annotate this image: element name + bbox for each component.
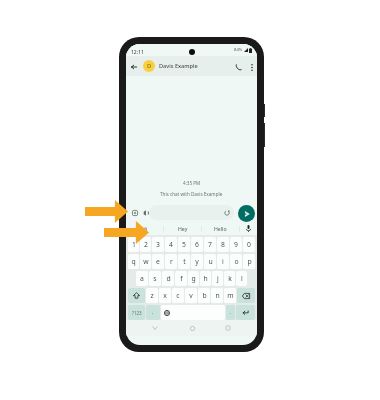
button[interactable]: n [211, 288, 223, 303]
button[interactable]: k [224, 271, 235, 286]
staticText: n [215, 291, 220, 300]
button[interactable]: 2 [140, 237, 151, 252]
button[interactable]: w [140, 254, 151, 269]
staticText: 8 [221, 240, 225, 249]
staticText: 3 [156, 240, 160, 249]
staticText: b [202, 291, 207, 300]
button[interactable]: Voice input [240, 222, 257, 235]
staticText: D [147, 62, 152, 70]
staticText: Hello [214, 225, 227, 232]
button[interactable]: f [175, 271, 187, 286]
button[interactable]: Stickers [141, 208, 151, 218]
button[interactable]: Hello [202, 222, 239, 235]
staticText: 4 [169, 240, 173, 249]
staticText: s [153, 274, 157, 283]
button[interactable]: 8 [217, 237, 229, 252]
button[interactable]: Recent apps [221, 321, 235, 335]
button[interactable]: b [198, 288, 210, 303]
staticText: y [195, 257, 199, 266]
button[interactable]: Hi [126, 222, 163, 235]
button[interactable]: Add attachment [130, 208, 140, 218]
button[interactable]: Call [232, 61, 244, 73]
button[interactable] [149, 205, 234, 220]
staticText: 0 [247, 240, 251, 249]
staticText: l [241, 274, 243, 283]
button[interactable]: u [204, 254, 216, 269]
button[interactable]: d [162, 271, 174, 286]
button[interactable]: Hey [164, 222, 201, 235]
button[interactable]: Backspace [237, 288, 255, 303]
button[interactable]: Home [185, 321, 199, 335]
button[interactable]: i [217, 254, 229, 269]
button[interactable]: j [212, 271, 223, 286]
staticText: f [180, 274, 183, 283]
button[interactable]: Period [226, 305, 235, 320]
button[interactable]: o [230, 254, 242, 269]
staticText: This chat with Davis Example [160, 191, 223, 197]
button[interactable]: r [165, 254, 177, 269]
button[interactable]: p [243, 254, 255, 269]
button[interactable]: q [128, 254, 139, 269]
staticText: 1 [132, 240, 136, 249]
button[interactable]: s [149, 271, 161, 286]
staticText: x [163, 291, 167, 300]
button[interactable]: g [188, 271, 199, 286]
staticText: 9 [234, 240, 238, 249]
button[interactable]: 0 [243, 237, 255, 252]
staticText: a [140, 274, 144, 283]
staticText: Davis Example [159, 62, 198, 70]
staticText: ?123 [132, 310, 142, 316]
button[interactable]: ?123 [128, 305, 145, 320]
button[interactable]: v [185, 288, 197, 303]
button[interactable]: Back [148, 321, 162, 335]
staticText: p [247, 257, 252, 266]
staticText: 84% [234, 47, 243, 53]
button[interactable]: 9 [230, 237, 242, 252]
staticText: c [176, 291, 180, 300]
button[interactable]: 5 [178, 237, 190, 252]
button[interactable]: y [191, 254, 203, 269]
button[interactable]: Shift [128, 288, 145, 303]
button[interactable]: m [224, 288, 236, 303]
button[interactable]: 3 [152, 237, 164, 252]
button[interactable]: Space [161, 305, 225, 320]
button[interactable]: 1 [128, 237, 139, 252]
staticText: 2 [144, 240, 148, 249]
staticText: q [131, 257, 136, 266]
staticText: 7 [208, 240, 212, 249]
button[interactable]: 7 [204, 237, 216, 252]
staticText: 12:11 [131, 49, 144, 56]
button[interactable]: l [236, 271, 247, 286]
staticText: r [170, 257, 173, 266]
button[interactable]: 4 [165, 237, 177, 252]
staticText: z [150, 291, 154, 300]
button[interactable]: Send [238, 205, 255, 222]
button[interactable]: 6 [191, 237, 203, 252]
button[interactable]: Enter [236, 305, 255, 320]
button[interactable]: More options [246, 61, 257, 73]
staticText: v [189, 291, 193, 300]
button[interactable]: c [172, 288, 184, 303]
button[interactable]: Back [128, 61, 140, 73]
button[interactable]: t [178, 254, 190, 269]
staticText: , [152, 309, 154, 316]
staticText: g [191, 274, 196, 283]
button[interactable]: Comma [146, 305, 160, 320]
staticText: m [227, 291, 234, 300]
button[interactable]: h [200, 271, 211, 286]
staticText: e [156, 257, 160, 266]
staticText: 4:35 PM [183, 180, 201, 186]
button[interactable]: e [152, 254, 164, 269]
staticText: d [166, 274, 171, 283]
button[interactable]: z [146, 288, 158, 303]
staticText: j [217, 274, 219, 283]
staticText: i [222, 257, 224, 266]
staticText: w [143, 257, 149, 266]
button[interactable]: a [136, 271, 148, 286]
staticText: u [208, 257, 213, 266]
staticText: 5 [182, 240, 186, 249]
button[interactable]: x [159, 288, 171, 303]
staticText: . [230, 309, 232, 316]
staticText: k [228, 274, 232, 283]
staticText: Hey [178, 225, 188, 232]
